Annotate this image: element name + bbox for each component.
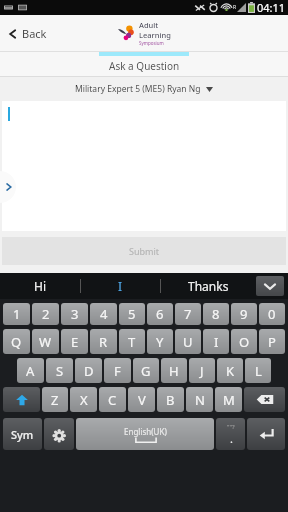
staticText: R [233,4,237,11]
button[interactable]: 1 [3,303,30,325]
staticText: D [84,362,94,380]
button[interactable]: Enter [247,418,285,450]
button[interactable]: Submit [2,237,286,265]
staticText: N [195,391,205,409]
button[interactable]: Hi [0,273,80,299]
button[interactable]: J [189,358,215,383]
button[interactable]: L [245,358,271,383]
staticText: Y [156,333,164,351]
staticText: I [214,333,219,351]
staticText: English(UK) [124,426,167,437]
button[interactable]: M [215,387,242,412]
staticText: O [239,333,250,351]
button[interactable]: Y [147,329,173,354]
staticText: . [230,431,233,446]
button[interactable]: 8 [203,303,229,325]
button[interactable]: O [231,329,257,354]
button[interactable]: Thanks [161,273,256,299]
button[interactable]: Expand suggestions [256,276,284,296]
button[interactable]: 9 [231,303,257,325]
staticText: E [71,333,79,351]
staticText: B [166,391,175,409]
staticText: 9 [240,305,248,323]
staticText: S [56,362,64,380]
button[interactable]: 2 [32,303,59,325]
staticText: Back [22,26,47,41]
staticText: V [138,391,146,409]
button[interactable]: Open panel [0,171,16,203]
button[interactable]: English(UK) [76,418,214,450]
staticText: U [183,333,193,351]
button[interactable]: Period [216,418,245,450]
staticText: L [255,362,262,380]
button[interactable]: V [128,387,155,412]
button[interactable]: T [119,329,145,354]
staticText: 3 [71,305,79,323]
button[interactable]: I [81,273,160,299]
staticText: 8 [212,305,220,323]
staticText: T [128,333,136,351]
staticText: ""? [227,423,235,431]
button[interactable]: R [90,329,117,354]
button[interactable]: 0 [259,303,285,325]
button[interactable]: Z [42,387,68,412]
staticText: Sym [11,427,34,442]
button[interactable]: K [217,358,243,383]
staticText: K [226,362,235,380]
button[interactable]: Backspace [244,387,285,412]
staticText: Z [51,391,59,409]
button[interactable]: 7 [175,303,201,325]
button[interactable]: X [70,387,97,412]
staticText: C [108,391,117,409]
button[interactable]: Sym [3,418,42,450]
staticText: Symposium [139,40,164,46]
button[interactable]: E [61,329,88,354]
staticText: Ask a Question [109,59,180,73]
staticText: H [169,362,179,380]
button[interactable]: N [186,387,213,412]
button[interactable]: I [203,329,229,354]
staticText: 0 [268,305,276,323]
button[interactable]: D [75,358,102,383]
staticText: Adult [139,20,159,30]
button[interactable]: Keyboard settings [44,418,74,450]
staticText: Thanks [188,278,229,294]
staticText: P [268,333,276,351]
staticText: X [80,391,88,409]
staticText: A [26,362,35,380]
staticText: J [200,362,204,380]
button[interactable]: Shift [3,387,40,412]
staticText: I [118,278,123,294]
staticText: Hi [34,278,46,294]
button[interactable]: C [99,387,126,412]
button[interactable]: U [175,329,201,354]
staticText: Learning [139,30,171,40]
button[interactable]: 3 [61,303,88,325]
staticText: F [114,362,121,380]
button[interactable]: 6 [147,303,173,325]
button[interactable]: 5 [119,303,145,325]
staticText: G [141,362,151,380]
button[interactable]: Q [3,329,30,354]
staticText: 1 [13,305,21,323]
button[interactable]: G [133,358,159,383]
button[interactable]: F [104,358,131,383]
button[interactable]: 4 [90,303,117,325]
staticText: 4 [100,305,108,323]
staticText: 2 [42,305,50,323]
button[interactable]: P [259,329,285,354]
button[interactable]: S [46,358,73,383]
staticText: 04:11 [257,0,286,15]
button[interactable]: Ask a Question [0,56,288,76]
staticText: M [223,391,235,409]
button[interactable]: H [161,358,187,383]
button[interactable]: Military Expert 5 (ME5) Ryan Ng [0,77,288,101]
staticText: Military Expert 5 (ME5) Ryan Ng [75,83,201,95]
staticText: 6 [156,305,164,323]
button[interactable]: W [32,329,59,354]
button[interactable]: A [17,358,44,383]
staticText: Submit [129,245,160,257]
button[interactable]: B [157,387,184,412]
staticText: W [39,333,52,351]
button[interactable]: Back [6,22,49,45]
